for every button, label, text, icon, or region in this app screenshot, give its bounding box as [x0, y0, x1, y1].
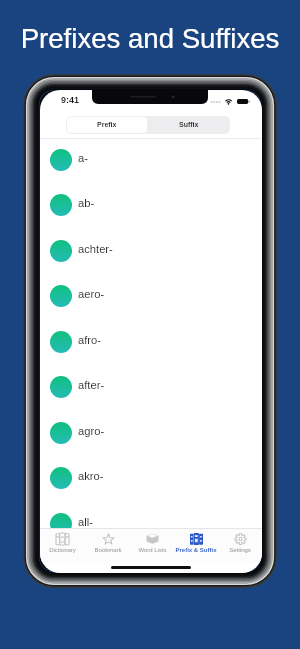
staticText: Word Lists — [138, 547, 167, 554]
staticText: Prefixes and Suffixes — [0, 23, 300, 54]
button[interactable]: Word Lists — [130, 529, 174, 563]
staticText: after- — [78, 379, 105, 392]
button[interactable]: achter- — [40, 228, 262, 273]
staticText: Bookmark — [94, 547, 122, 554]
staticText: akro- — [78, 470, 104, 483]
staticText: Suffix — [179, 121, 199, 129]
button[interactable]: after- — [40, 364, 262, 409]
staticText: all- — [78, 516, 93, 529]
staticText: Prefix & Suffix — [175, 547, 217, 554]
staticText: a- — [78, 152, 88, 165]
button[interactable]: all- — [40, 501, 262, 529]
staticText: Settings — [229, 547, 251, 554]
staticText: agro- — [78, 425, 105, 438]
button[interactable]: afro- — [40, 319, 262, 364]
button[interactable]: Prefix & Suffix — [174, 529, 218, 563]
button[interactable]: Dictionary — [40, 529, 85, 563]
staticText: ab- — [78, 197, 95, 210]
staticText: Dictionary — [49, 547, 76, 554]
staticText: achter- — [78, 243, 113, 256]
button[interactable]: Prefix — [67, 117, 147, 133]
button[interactable]: aero- — [40, 273, 262, 318]
button[interactable]: Settings — [218, 529, 262, 563]
staticText: Prefix — [97, 121, 117, 129]
button[interactable]: agro- — [40, 410, 262, 455]
button[interactable]: Bookmark — [85, 529, 130, 563]
button[interactable]: ab- — [40, 182, 262, 227]
button[interactable]: Suffix — [148, 116, 230, 134]
staticText: 9:41 — [61, 95, 80, 105]
staticText: afro- — [78, 334, 102, 347]
staticText: aero- — [78, 288, 105, 301]
button[interactable]: a- — [40, 137, 262, 182]
button[interactable]: akro- — [40, 455, 262, 500]
